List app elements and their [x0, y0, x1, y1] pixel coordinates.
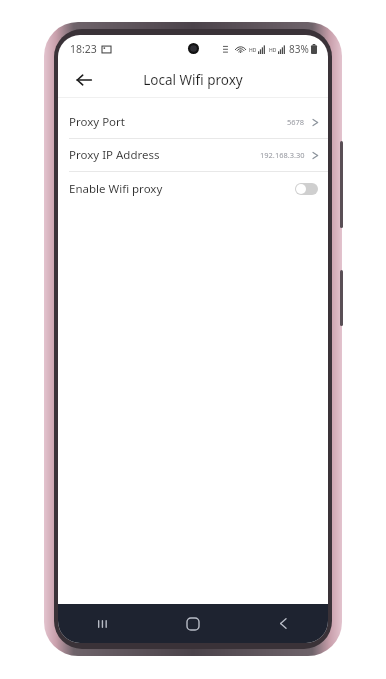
staticText: 18:23 [70, 42, 97, 56]
other: Power [340, 270, 343, 326]
other: Volume [340, 141, 343, 228]
button[interactable]: Proxy Port [58, 106, 328, 138]
staticText: Proxy IP Address [69, 147, 160, 163]
button[interactable]: Proxy IP Address [58, 139, 328, 171]
button[interactable]: Back [238, 604, 328, 643]
staticText: Proxy Port [69, 114, 125, 130]
button[interactable]: Enable Wifi proxy [58, 172, 328, 206]
staticText: Enable Wifi proxy [69, 181, 163, 197]
button[interactable]: Recents [58, 604, 148, 643]
staticText: HD [249, 47, 257, 54]
staticText: Local Wifi proxy [143, 71, 243, 89]
staticText: 192.168.3.30 [260, 150, 305, 160]
staticText: HD [269, 47, 277, 54]
button[interactable]: Home [148, 604, 238, 643]
staticText: 5678 [287, 117, 305, 127]
button[interactable]: Back [69, 65, 99, 95]
staticText: 83% [289, 42, 309, 56]
